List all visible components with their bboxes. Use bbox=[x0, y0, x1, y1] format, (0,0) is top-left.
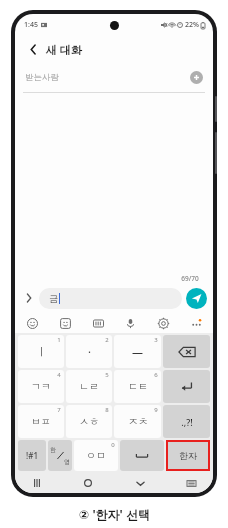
button[interactable]: Space bbox=[120, 440, 164, 471]
button[interactable]: Voice input bbox=[123, 316, 137, 330]
staticText: ― bbox=[132, 344, 143, 359]
staticText: · bbox=[88, 344, 91, 359]
staticText: ㅣ bbox=[36, 345, 47, 359]
button[interactable]: Recents bbox=[29, 475, 45, 491]
button[interactable]: Emoji bbox=[25, 316, 39, 330]
button[interactable]: ㅂㅍ bbox=[18, 405, 64, 438]
staticText: 22% bbox=[185, 20, 199, 30]
button[interactable]: 금 bbox=[39, 288, 182, 309]
button[interactable]: ― bbox=[114, 335, 161, 368]
button[interactable]: Settings bbox=[156, 316, 170, 330]
button[interactable]: · bbox=[66, 335, 112, 368]
staticText: .,?! bbox=[181, 416, 193, 428]
button[interactable]: Backspace bbox=[163, 335, 210, 368]
button[interactable]: ㅈㅊ bbox=[114, 405, 161, 438]
staticText: 5 bbox=[105, 371, 109, 379]
button[interactable]: ㄷㅌ bbox=[114, 370, 161, 403]
staticText: 8 bbox=[105, 406, 109, 414]
button[interactable]: GIF bbox=[91, 316, 105, 330]
staticText: ㅂㅍ bbox=[31, 415, 51, 428]
staticText: 7 bbox=[57, 406, 61, 414]
button[interactable]: Korean English toggle bbox=[48, 440, 72, 471]
staticText: ㄱㅋ bbox=[31, 380, 51, 393]
button[interactable]: Stickers bbox=[58, 316, 72, 330]
staticText: ㄷㅌ bbox=[128, 380, 148, 393]
staticText: 1:45 bbox=[24, 20, 38, 30]
staticText: 받는사람 bbox=[25, 72, 59, 83]
button[interactable]: Add recipient bbox=[190, 71, 203, 84]
button[interactable]: !#1 bbox=[18, 440, 46, 471]
staticText: 2 bbox=[105, 336, 109, 344]
staticText: 9 bbox=[154, 406, 158, 414]
button[interactable]: ㅅㅎ bbox=[66, 405, 112, 438]
staticText: ㄴㄹ bbox=[79, 380, 99, 393]
staticText: ㅈㅊ bbox=[128, 415, 148, 428]
staticText: !#1 bbox=[26, 450, 38, 461]
button[interactable]: Change keyboard bbox=[183, 475, 199, 491]
staticText: ② '한자' 선택 bbox=[79, 506, 150, 522]
button[interactable]: Hide keyboard bbox=[132, 475, 148, 491]
staticText: 3 bbox=[154, 336, 158, 344]
staticText: 한 bbox=[50, 446, 56, 454]
button[interactable]: More options bbox=[189, 316, 203, 330]
staticText: 영 bbox=[64, 458, 70, 466]
button[interactable]: Home bbox=[80, 475, 96, 491]
button[interactable]: ㄱㅋ bbox=[18, 370, 64, 403]
button[interactable]: Enter bbox=[163, 370, 210, 403]
button[interactable]: ㄴㄹ bbox=[66, 370, 112, 403]
button[interactable]: ㅇㅁ bbox=[74, 440, 118, 471]
button[interactable]: Back bbox=[24, 40, 42, 58]
button[interactable]: Expand bbox=[21, 290, 37, 306]
staticText: 0 bbox=[111, 441, 115, 449]
staticText: 새 대화 bbox=[46, 42, 82, 57]
button[interactable]: 받는사람 bbox=[25, 62, 203, 92]
button[interactable]: 한자 bbox=[166, 440, 210, 471]
staticText: 4 bbox=[57, 371, 61, 379]
staticText: ㅇㅁ bbox=[86, 449, 106, 462]
staticText: 6 bbox=[154, 371, 158, 379]
button[interactable]: .,?! bbox=[163, 405, 210, 438]
button[interactable]: ㅣ bbox=[18, 335, 64, 368]
staticText: 1 bbox=[57, 336, 61, 344]
staticText: 한자 bbox=[179, 450, 197, 461]
staticText: 69/70 bbox=[181, 274, 199, 283]
staticText: ㅅㅎ bbox=[79, 415, 99, 428]
staticText: 금 bbox=[49, 293, 58, 304]
button[interactable]: Send bbox=[186, 288, 207, 309]
